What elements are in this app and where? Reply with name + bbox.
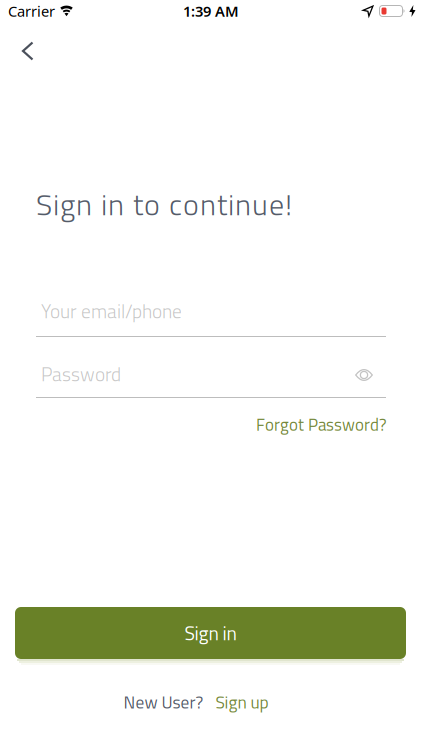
button[interactable]: Sign in [15, 607, 406, 659]
button[interactable]: Forgot Password? [256, 412, 387, 437]
button[interactable]: Show password [355, 367, 386, 380]
staticText: Password [41, 359, 121, 389]
staticText: 1:39 AM [183, 1, 239, 21]
staticText: Carrier [8, 1, 55, 21]
staticText: Sign in to continue! [36, 181, 292, 227]
button[interactable]: Sign up [215, 689, 268, 715]
staticText: Sign in [184, 618, 236, 648]
staticText: New User? [123, 689, 203, 715]
staticText: Your email/phone [41, 296, 182, 326]
staticText: Forgot Password? [256, 412, 387, 437]
staticText: Sign up [215, 689, 268, 715]
button[interactable]: Back [0, 22, 34, 71]
